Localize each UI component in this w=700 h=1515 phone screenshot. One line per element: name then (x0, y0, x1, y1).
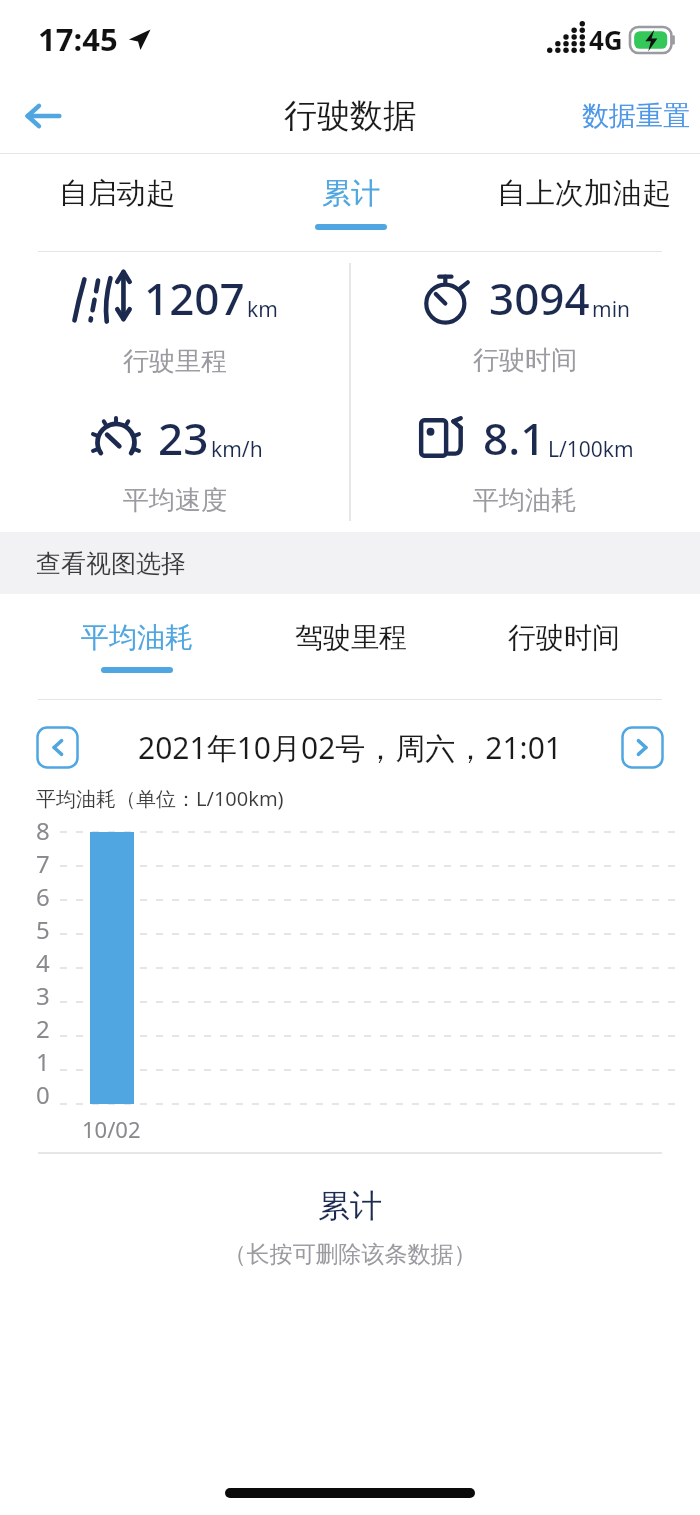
button[interactable]: 累计 (234, 154, 467, 251)
button[interactable]: 1207 (0, 252, 350, 392)
staticText: 行驶里程 (123, 345, 227, 378)
button[interactable]: Back (14, 87, 72, 145)
staticText: 3 (36, 979, 50, 1012)
staticText: 6 (36, 880, 50, 913)
staticText: km (247, 295, 278, 324)
staticText: （长按可删除该条数据） (0, 1240, 700, 1269)
staticText: 累计 (322, 175, 380, 212)
staticText: 行驶时间 (473, 344, 577, 377)
staticText: 2 (36, 1012, 50, 1045)
button[interactable]: 平均油耗 (30, 594, 244, 699)
button[interactable]: 23 (0, 392, 350, 532)
staticText: 17:45 (38, 18, 118, 60)
button[interactable]: 8.1 (350, 392, 700, 532)
staticText: km/h (211, 435, 263, 464)
staticText: 4 (36, 946, 50, 979)
button[interactable]: 驾驶里程 (244, 594, 457, 699)
button[interactable]: 数据重置 (572, 89, 700, 143)
button[interactable]: Next day (621, 726, 664, 769)
staticText: 行驶数据 (284, 95, 416, 137)
staticText: 平均速度 (123, 484, 227, 517)
staticText: 1207 (144, 268, 245, 328)
staticText: 查看视图选择 (36, 548, 186, 579)
staticText: 2021年10月02号，周六，21:01 (79, 727, 621, 768)
staticText: 8.1 (483, 408, 546, 468)
button[interactable]: Previous day (36, 726, 79, 769)
staticText: 自上次加油起 (497, 175, 671, 212)
staticText: 平均油耗（单位：L/100km) (36, 785, 284, 812)
button[interactable]: 行驶时间 (457, 594, 670, 699)
staticText: min (592, 295, 631, 324)
staticText: 平均油耗 (473, 484, 577, 517)
staticText: 平均油耗 (81, 620, 193, 655)
button[interactable]: 自启动起 (0, 154, 234, 251)
staticText: 行驶时间 (508, 620, 620, 655)
staticText: 驾驶里程 (295, 620, 407, 655)
staticText: 0 (36, 1078, 50, 1104)
button[interactable]: 自上次加油起 (467, 154, 700, 251)
staticText: 5 (36, 913, 50, 946)
staticText: L/100km (548, 435, 634, 464)
button[interactable]: 3094 (350, 252, 700, 392)
staticText: 1 (36, 1045, 50, 1078)
staticText: 7 (36, 847, 50, 880)
staticText: 23 (158, 408, 209, 468)
staticText: 3094 (489, 268, 590, 328)
staticText: 自启动起 (59, 175, 175, 212)
staticText: 累计 (0, 1186, 700, 1226)
staticText: 10/02 (82, 1114, 141, 1144)
staticText: 数据重置 (582, 99, 690, 133)
staticText: 4G (589, 22, 623, 57)
staticText: 8 (36, 814, 50, 847)
